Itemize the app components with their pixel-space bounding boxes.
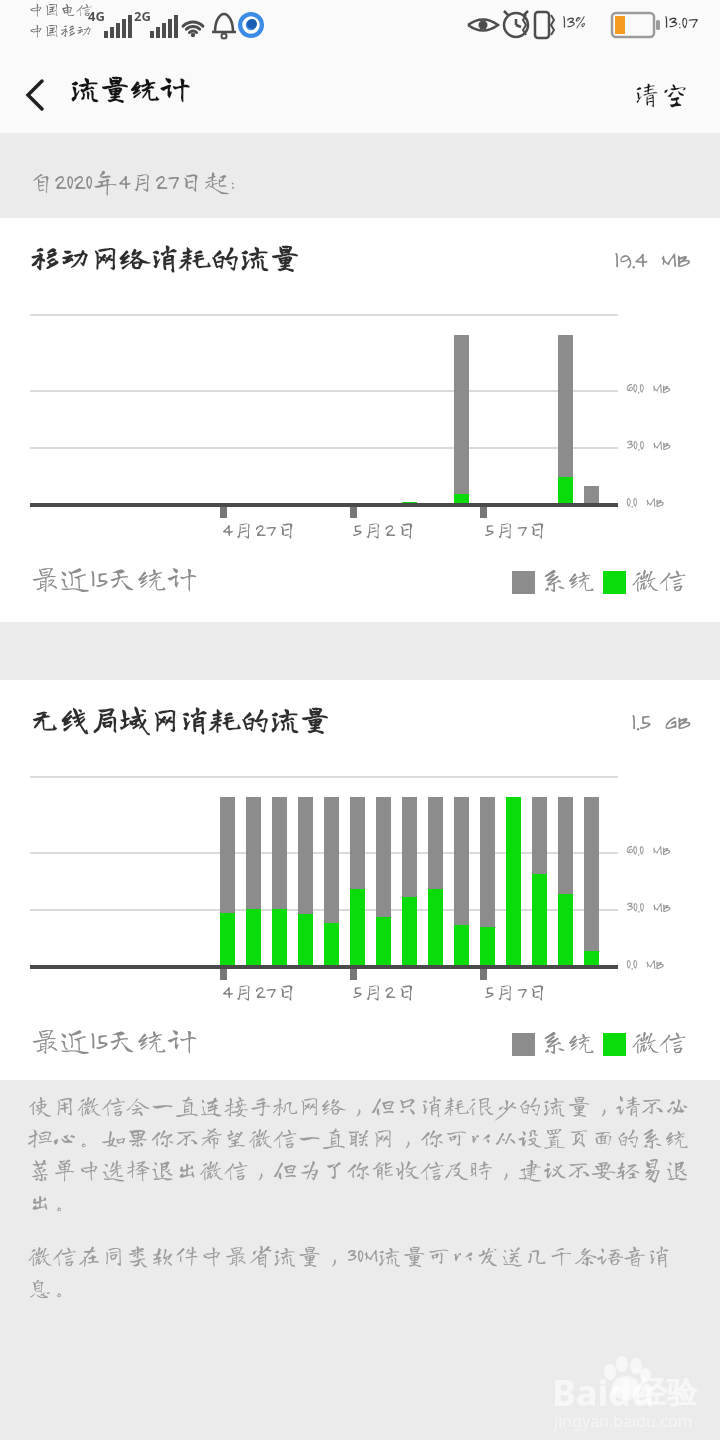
- staticText: 19.4 MB: [614, 244, 690, 272]
- staticText: 系统: [541, 1027, 595, 1054]
- staticText: 流量统计: [70, 73, 190, 103]
- staticText: 清空: [633, 79, 690, 107]
- staticText: 使用微信会一直连接手机网络，但只消耗很少的流量，请不必 担心。如果你不希望微信一…: [28, 1093, 690, 1213]
- staticText: 无线局域网消耗的流量: [30, 704, 330, 734]
- staticText: 5月2日: [352, 518, 418, 541]
- staticText: 0.0 MB: [626, 955, 664, 972]
- staticText: 4月27日: [222, 980, 298, 1003]
- staticText: 5月7日: [484, 518, 549, 541]
- staticText: 最近15天统计: [30, 1025, 197, 1055]
- staticText: 60.0 MB: [626, 841, 670, 858]
- staticText: Baidu: [552, 1368, 655, 1417]
- staticText: 1.5 GB: [631, 706, 690, 734]
- staticText: 60.0 MB: [626, 379, 670, 396]
- staticText: 0.0 MB: [626, 493, 664, 510]
- staticText: 中国移动: [28, 22, 93, 38]
- button[interactable]: [14, 73, 58, 117]
- staticText: 中国电信: [28, 1, 93, 17]
- staticText: 微信: [632, 565, 686, 592]
- staticText: 5月2日: [352, 980, 418, 1003]
- staticText: 4月27日: [222, 518, 298, 541]
- staticText: 2G: [134, 7, 151, 25]
- staticText: 最近15天统计: [30, 563, 197, 593]
- staticText: 4G: [88, 7, 105, 25]
- staticText: 系统: [541, 565, 595, 592]
- staticText: 经验: [637, 1374, 697, 1412]
- staticText: 13%: [562, 11, 585, 33]
- staticText: 30.0 MB: [626, 436, 671, 453]
- staticText: 微信在同类软件中最省流量，30M流量可以发送几千条语音消 息。: [28, 1243, 672, 1299]
- button[interactable]: 清空: [623, 69, 700, 117]
- staticText: 自2020年4月27日起:: [28, 168, 235, 194]
- staticText: 30.0 MB: [626, 898, 671, 915]
- staticText: 微信: [632, 1027, 686, 1054]
- staticText: 13:07: [664, 10, 697, 33]
- staticText: 移动网络消耗的流量: [30, 242, 300, 272]
- staticText: 5月7日: [484, 980, 549, 1003]
